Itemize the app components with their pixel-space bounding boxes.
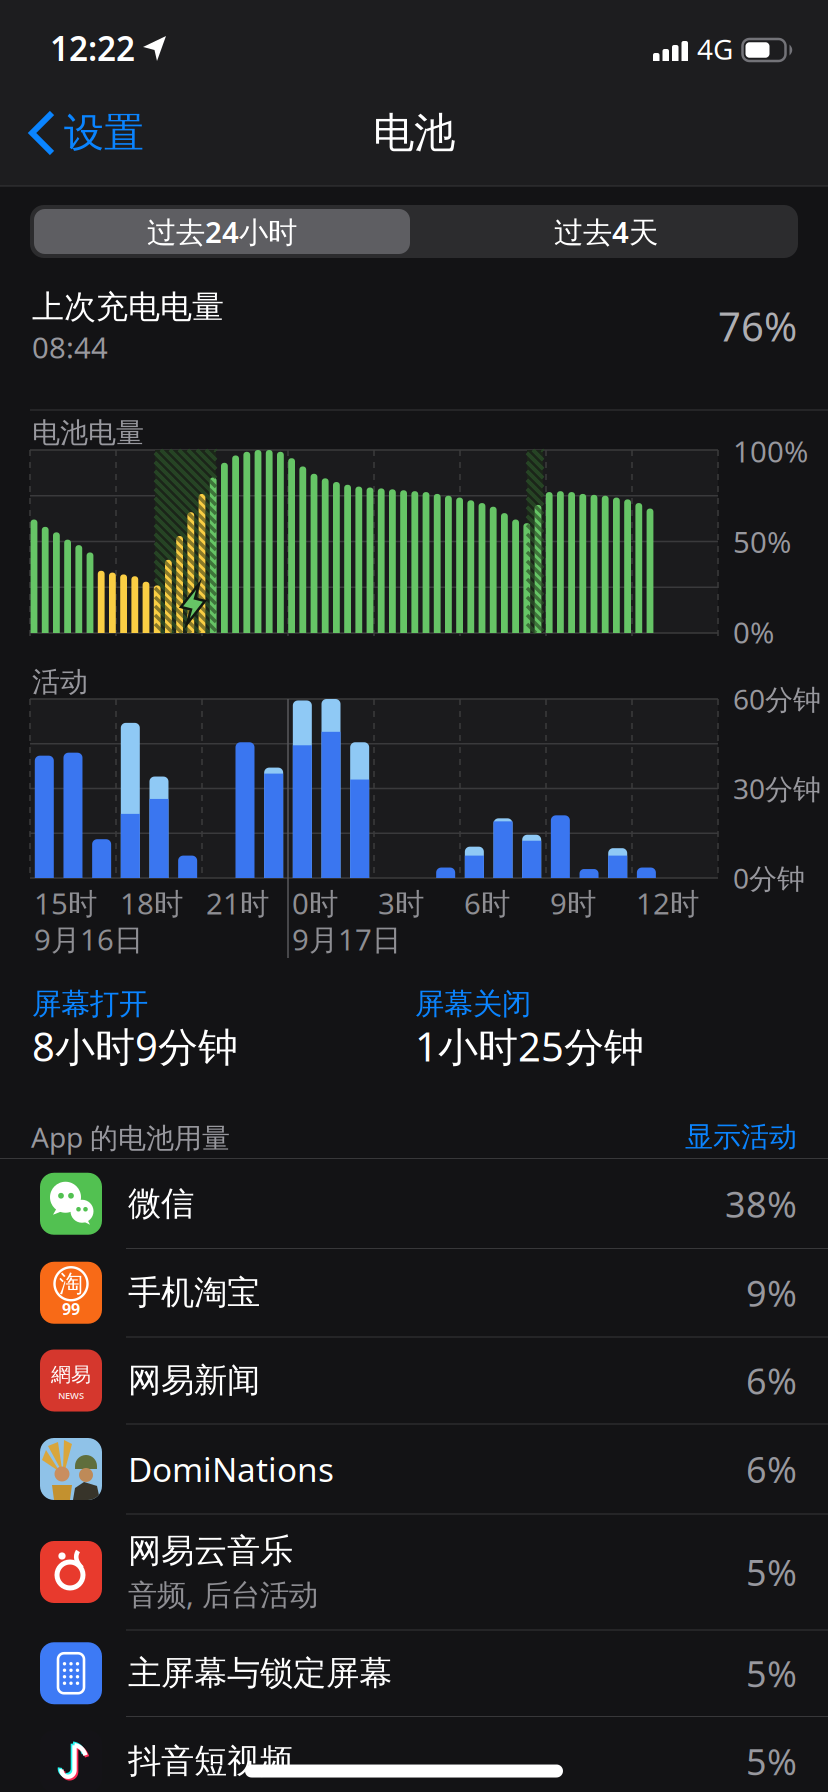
staticText: 屏幕关闭: [415, 986, 531, 1022]
staticText: 12时: [636, 883, 699, 922]
staticText: 6时: [464, 883, 510, 922]
staticText: 8小时9分钟: [32, 1019, 238, 1072]
staticText: 设置: [64, 108, 144, 157]
staticText: 6%: [746, 1445, 797, 1493]
staticText: 21时: [206, 883, 269, 922]
staticText: DomiNations: [128, 1447, 334, 1491]
staticText: 抖音短视频: [128, 1741, 293, 1782]
staticText: 30分钟: [733, 770, 821, 807]
staticText: 网易新闻: [128, 1360, 260, 1401]
button[interactable]: 过去4天: [416, 205, 796, 258]
staticText: 100%: [733, 431, 808, 470]
staticText: 76%: [718, 299, 797, 352]
staticText: 38%: [725, 1180, 797, 1228]
staticText: App 的电池用量: [31, 1118, 230, 1156]
staticText: 99: [62, 1298, 80, 1319]
staticText: NEWS: [58, 1389, 84, 1402]
staticText: 5%: [746, 1649, 797, 1697]
staticText: 活动: [32, 665, 88, 699]
staticText: 电池电量: [32, 416, 144, 450]
staticText: 0%: [733, 612, 774, 651]
staticText: 过去24小时: [147, 212, 297, 251]
staticText: 显示活动: [685, 1120, 797, 1154]
staticText: 屏幕打开: [32, 986, 148, 1022]
staticText: 18时: [120, 883, 183, 922]
staticText: 60分钟: [733, 680, 821, 718]
staticText: 上次充电电量: [32, 287, 224, 327]
staticText: 电池: [373, 108, 455, 158]
staticText: 1小时25分钟: [415, 1019, 644, 1072]
staticText: 0时: [292, 883, 338, 922]
staticText: 过去4天: [554, 212, 658, 251]
staticText: 5%: [746, 1548, 797, 1596]
staticText: 9月17日: [292, 919, 401, 958]
button[interactable]: 手机淘宝: [0, 1248, 828, 1337]
button[interactable]: 返回设置: [28, 103, 188, 163]
staticText: 淘: [59, 1269, 83, 1298]
button[interactable]: 网易云音乐: [0, 1514, 828, 1630]
staticText: 15时: [34, 883, 97, 922]
staticText: 3时: [378, 883, 424, 922]
button[interactable]: 微信: [0, 1159, 828, 1248]
staticText: 網易: [51, 1362, 91, 1387]
button[interactable]: 过去24小时: [32, 205, 412, 258]
staticText: 50%: [733, 522, 791, 561]
staticText: 0分钟: [733, 859, 805, 897]
staticText: 微信: [128, 1183, 194, 1224]
staticText: 9%: [746, 1269, 797, 1317]
staticText: 9月16日: [34, 919, 143, 958]
staticText: 4G: [697, 30, 733, 68]
staticText: 音频, 后台活动: [128, 1574, 318, 1613]
staticText: 网易云音乐: [128, 1530, 293, 1571]
button[interactable]: 网易新闻: [0, 1337, 828, 1424]
staticText: 6%: [746, 1357, 797, 1404]
button[interactable]: 主屏幕与锁定屏幕: [0, 1630, 828, 1716]
staticText: 9时: [550, 883, 596, 922]
button[interactable]: DomiNations: [0, 1424, 828, 1514]
staticText: 12:22: [50, 26, 135, 70]
button[interactable]: 抖音短视频: [0, 1716, 828, 1792]
button[interactable]: 显示活动: [637, 1120, 797, 1154]
staticText: 主屏幕与锁定屏幕: [128, 1653, 392, 1694]
staticText: 手机淘宝: [128, 1272, 260, 1313]
staticText: 5%: [746, 1737, 797, 1785]
staticText: 08:44: [32, 327, 108, 366]
